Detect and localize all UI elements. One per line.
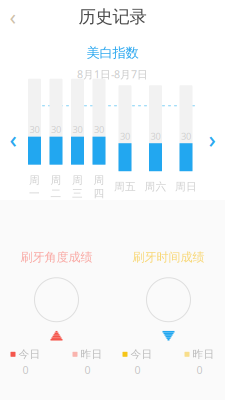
staticText: 30 bbox=[51, 123, 61, 136]
staticText: 刷牙时间成绩 bbox=[132, 250, 204, 265]
staticText: 周日 bbox=[175, 180, 197, 193]
staticText: 周一 bbox=[29, 174, 40, 200]
staticText: 8月1日-8月7日 bbox=[77, 67, 148, 81]
staticText: 周六 bbox=[144, 180, 166, 193]
button[interactable]: Back bbox=[0, 3, 28, 31]
staticText: 周五 bbox=[114, 180, 136, 193]
staticText: 昨日 bbox=[80, 348, 102, 361]
staticText: 昨日 bbox=[192, 348, 214, 361]
staticText: 30 bbox=[150, 130, 160, 142]
button[interactable]: Next week bbox=[201, 124, 223, 154]
staticText: 刷牙角度成绩 bbox=[20, 250, 92, 265]
staticText: 今日 bbox=[130, 348, 152, 361]
staticText: 今日 bbox=[18, 348, 40, 361]
staticText: 30 bbox=[29, 123, 39, 136]
staticText: 历史记录 bbox=[78, 6, 146, 27]
staticText: 0 bbox=[84, 363, 90, 377]
staticText: 30 bbox=[72, 123, 82, 136]
staticText: 周二 bbox=[50, 174, 61, 200]
staticText: 30 bbox=[120, 130, 130, 142]
staticText: ‹ bbox=[9, 124, 16, 154]
staticText: › bbox=[208, 124, 215, 154]
staticText: 30 bbox=[94, 123, 104, 136]
staticText: 0 bbox=[196, 363, 202, 377]
staticText: 周三 bbox=[72, 174, 83, 200]
button[interactable]: Previous week bbox=[2, 124, 24, 154]
staticText: 0 bbox=[134, 363, 140, 377]
staticText: 30 bbox=[181, 130, 191, 142]
staticText: ‹ bbox=[9, 3, 16, 31]
staticText: 周四 bbox=[93, 174, 104, 200]
staticText: 0 bbox=[22, 363, 28, 377]
staticText: 美白指数 bbox=[86, 45, 138, 61]
